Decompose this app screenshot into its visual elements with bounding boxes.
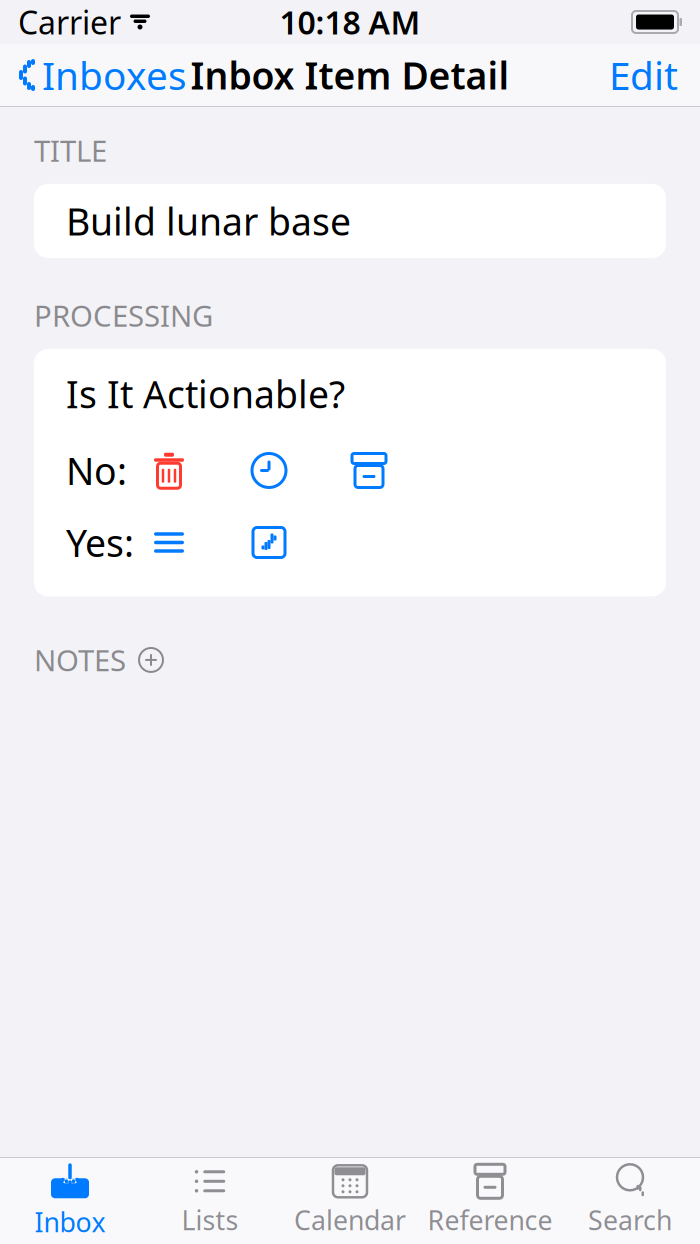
staticText: No: — [66, 446, 127, 495]
staticText: Edit — [609, 49, 678, 101]
staticText: Is It Actionable? — [66, 369, 345, 418]
staticText: Calendar — [294, 1202, 406, 1238]
staticText: Lists — [181, 1202, 238, 1238]
button[interactable]: Search — [560, 1158, 700, 1244]
staticText: TITLE — [34, 131, 107, 170]
staticText: Yes: — [66, 518, 134, 567]
staticText: PROCESSING — [34, 296, 213, 335]
button[interactable]: Calendar — [280, 1158, 420, 1244]
button[interactable]: Delete — [136, 444, 202, 496]
button[interactable]: Reference — [420, 1158, 560, 1244]
button[interactable]: Defer — [236, 444, 302, 496]
staticText: Reference — [427, 1202, 552, 1238]
button[interactable]: File as reference — [336, 444, 402, 496]
staticText: Inbox — [34, 1204, 105, 1240]
button[interactable]: Edit — [587, 45, 700, 105]
staticText: Search — [588, 1202, 672, 1238]
button[interactable]: Build lunar base — [34, 184, 666, 258]
button[interactable]: Add to list — [136, 516, 202, 568]
staticText: NOTES — [34, 640, 126, 679]
button[interactable]: Inbox — [0, 1158, 140, 1244]
staticText: Inboxes — [42, 49, 187, 101]
staticText: Carrier — [18, 1, 121, 43]
button[interactable]: Inboxes — [0, 45, 205, 105]
staticText: 10:18 AM — [279, 1, 420, 43]
staticText: Build lunar base — [66, 196, 351, 246]
staticText: Inbox Item Detail — [190, 50, 509, 100]
button[interactable]: Add note — [138, 647, 164, 673]
button[interactable]: Lists — [140, 1158, 280, 1244]
button[interactable]: Mark as task — [236, 516, 302, 568]
